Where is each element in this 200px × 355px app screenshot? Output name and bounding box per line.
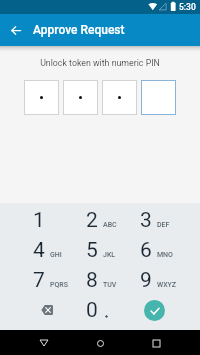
button[interactable]: 4 [20, 235, 74, 265]
button[interactable]: Navigate back [0, 14, 32, 46]
staticText: 5:30 [179, 2, 196, 12]
staticText: MNO [157, 251, 173, 259]
staticText: DEF [157, 221, 170, 229]
staticText: 0 [86, 298, 98, 323]
button[interactable]: Home [88, 331, 112, 355]
button[interactable]: Back [32, 331, 56, 355]
staticText: 1 [33, 208, 45, 233]
button[interactable]: PIN digit [141, 80, 176, 115]
staticText: PQRS [50, 281, 68, 289]
staticText: 6 [140, 238, 152, 263]
staticText: JKL [103, 251, 116, 259]
staticText: ABC [103, 221, 117, 229]
staticText: GHI [50, 251, 62, 259]
staticText: 4 [33, 238, 45, 263]
button[interactable]: 0 [73, 295, 127, 325]
button[interactable]: 8 [73, 265, 127, 295]
staticText: 9 [140, 268, 152, 293]
staticText: Approve Request [33, 23, 125, 37]
staticText: 3 [140, 208, 152, 233]
button[interactable]: 2 [73, 205, 127, 235]
button[interactable]: 6 [127, 235, 181, 265]
button[interactable]: 9 [127, 265, 181, 295]
button[interactable]: PIN digit entered [63, 80, 98, 115]
staticText: 2 [86, 208, 98, 233]
button[interactable]: 1 [20, 205, 74, 235]
staticText: Unlock token with numeric PIN [0, 58, 200, 68]
button[interactable]: Confirm PIN [127, 295, 181, 325]
button[interactable]: 3 [127, 205, 181, 235]
staticText: 8 [86, 268, 98, 293]
button[interactable]: Delete [20, 295, 74, 325]
staticText: 7 [33, 268, 45, 293]
staticText: 5 [86, 238, 98, 263]
staticText: TUV [103, 281, 117, 289]
button[interactable]: PIN digit entered [24, 80, 59, 115]
button[interactable]: 5 [73, 235, 127, 265]
button[interactable]: 7 [20, 265, 74, 295]
button[interactable]: Recent apps [144, 331, 168, 355]
staticText: WXYZ [157, 281, 177, 289]
button[interactable]: PIN digit entered [102, 80, 137, 115]
